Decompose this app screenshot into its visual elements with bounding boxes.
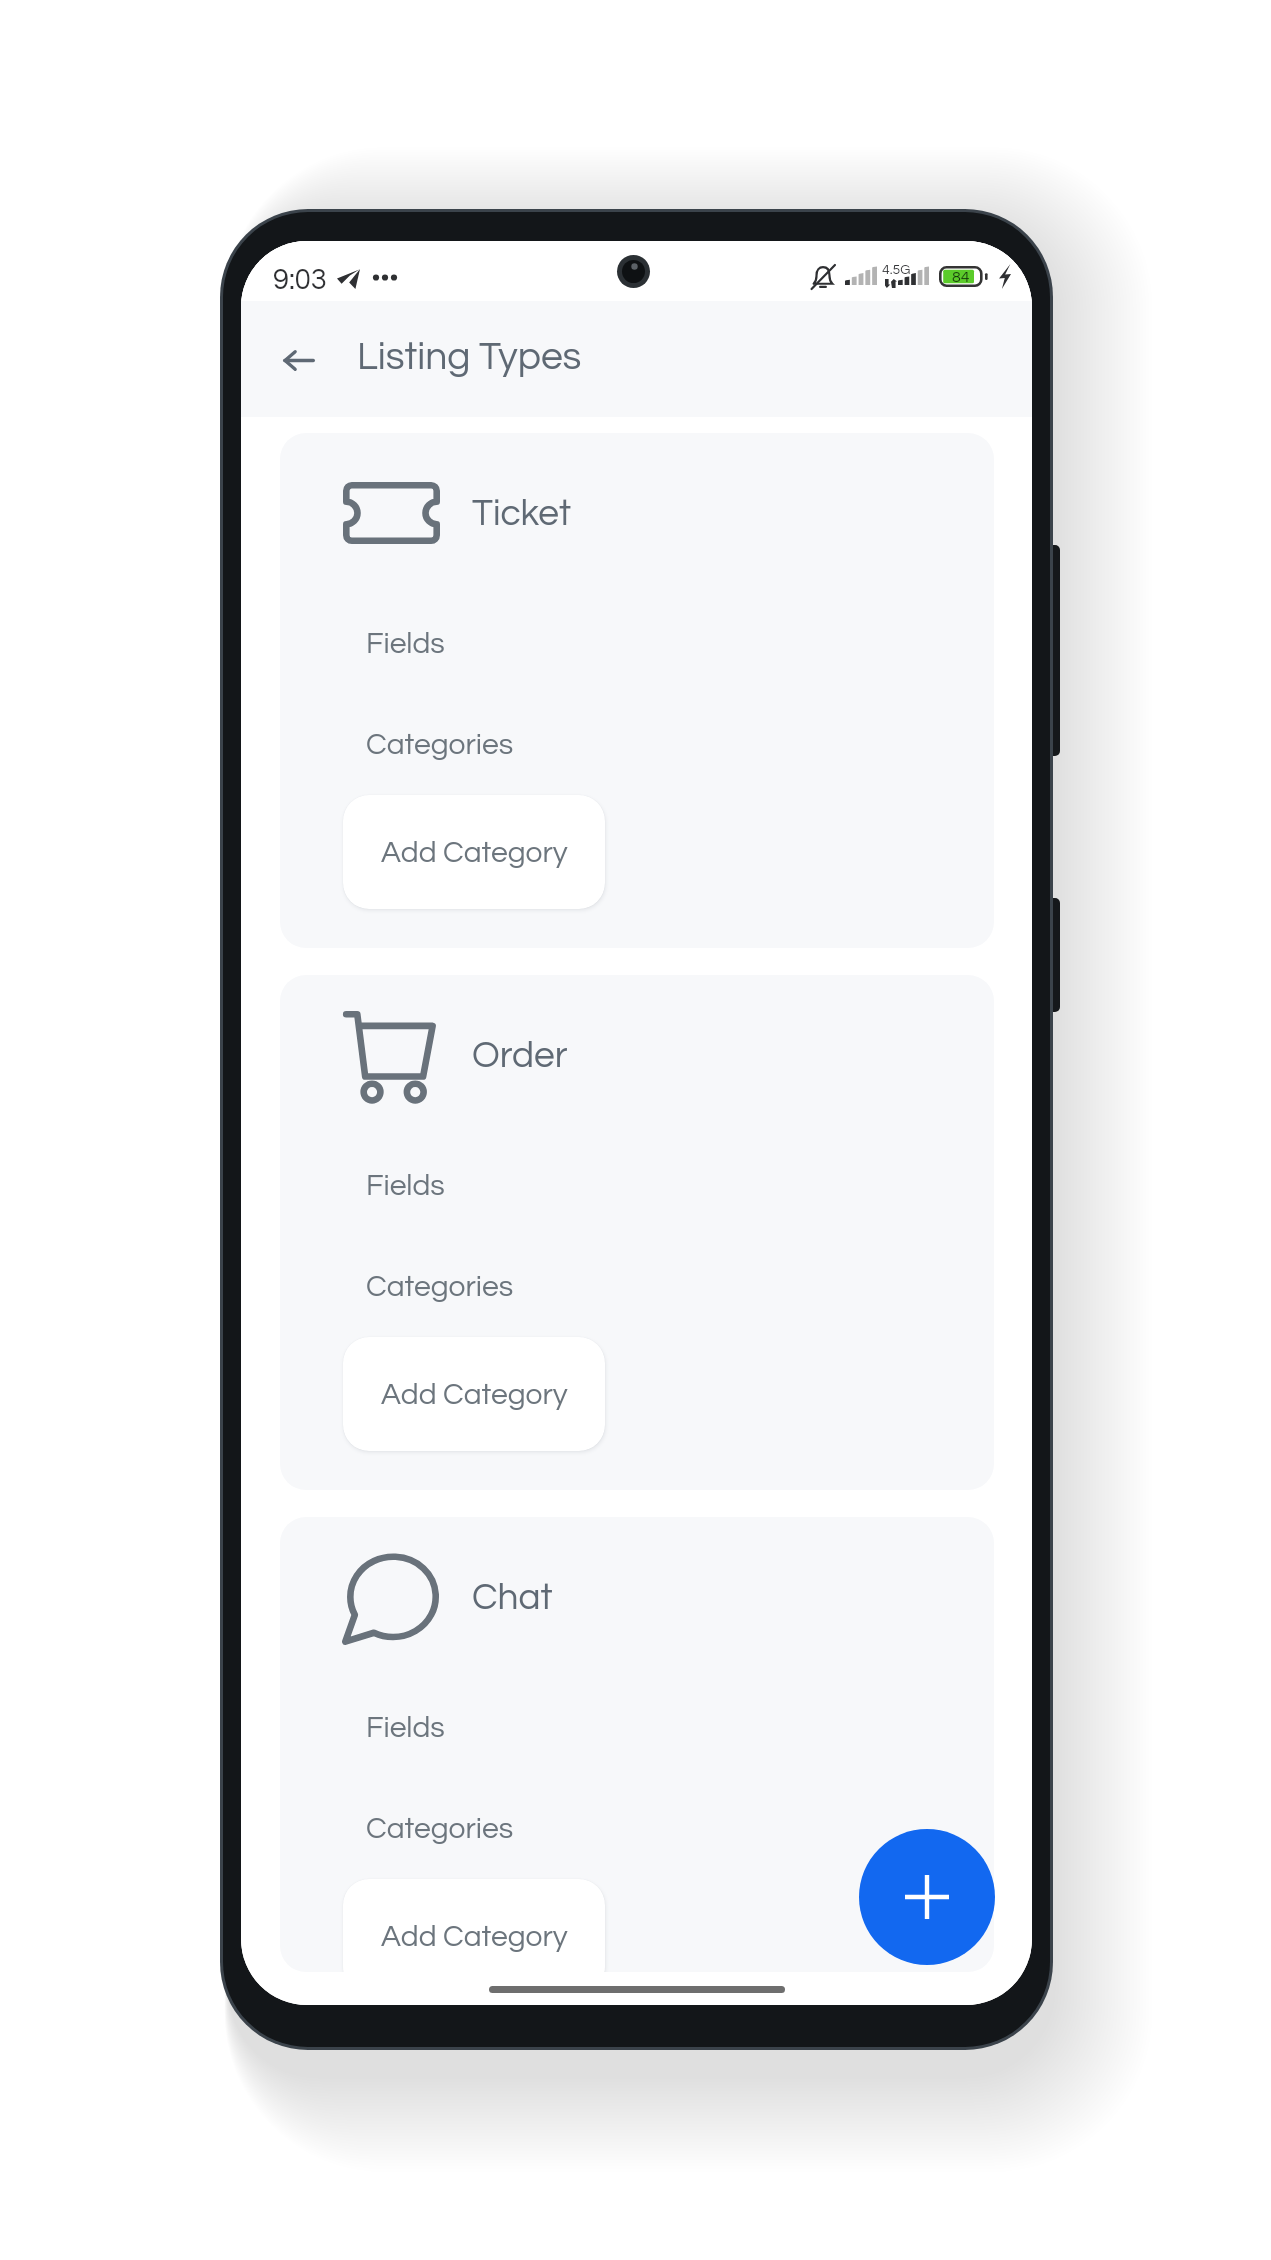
button[interactable]: Add Category — [343, 1337, 605, 1451]
button[interactable]: Add listing type — [859, 1829, 995, 1965]
staticText: Fields — [366, 628, 445, 659]
button[interactable]: Categories — [280, 1248, 994, 1324]
staticText: Fields — [366, 1712, 445, 1743]
staticText: Order — [472, 1037, 568, 1075]
staticText: Categories — [366, 1813, 514, 1844]
staticText: Categories — [366, 729, 514, 760]
button[interactable]: Categories — [280, 706, 994, 782]
staticText: Add Category — [381, 1921, 568, 1952]
button[interactable]: Categories — [280, 1790, 994, 1866]
staticText: Chat — [472, 1579, 553, 1617]
staticText: Categories — [366, 1271, 514, 1302]
button[interactable]: Fields — [280, 1689, 994, 1765]
staticText: Ticket — [472, 495, 571, 533]
button[interactable]: Order — [280, 975, 994, 1490]
button[interactable]: Fields — [280, 605, 994, 681]
button[interactable]: Add Category — [343, 795, 605, 909]
button[interactable]: Add Category — [343, 1879, 605, 1972]
staticText: Add Category — [381, 837, 568, 868]
staticText: Add Category — [381, 1379, 568, 1410]
staticText: 4.5G — [882, 263, 911, 277]
staticText: 9:03 — [273, 265, 327, 295]
button[interactable]: Ticket — [280, 433, 994, 948]
button[interactable]: Back — [267, 328, 331, 392]
button[interactable]: Fields — [280, 1147, 994, 1223]
staticText: Listing Types — [357, 337, 582, 377]
staticText: Fields — [366, 1170, 445, 1201]
staticText: 84 — [952, 269, 970, 285]
button[interactable]: Chat — [280, 1517, 994, 1972]
